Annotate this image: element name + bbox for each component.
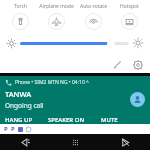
button[interactable]: SPEAKER ON	[48, 115, 101, 124]
button[interactable]: Edit	[110, 57, 125, 72]
staticText: Airplane mode	[39, 3, 74, 10]
button[interactable]: Hotspot	[112, 3, 147, 30]
staticText: HANG UP	[5, 116, 33, 124]
button[interactable]: MUTE	[101, 115, 145, 124]
staticText: Auto-rotate	[80, 3, 107, 10]
staticText: SPEAKER ON	[48, 116, 85, 124]
button[interactable]: Home	[50, 134, 100, 150]
button[interactable]: Recents	[100, 134, 150, 150]
button[interactable]: Settings	[130, 57, 145, 72]
staticText: Phone • SIM2 MTN NG • 04:10 ^	[15, 79, 89, 86]
button[interactable]: Airplane mode	[39, 3, 74, 30]
button[interactable]: Torch	[3, 3, 38, 30]
button[interactable]: Phone • SIM2 MTN NG • 04:10 ^	[0, 76, 150, 124]
staticText: P	[11, 125, 15, 133]
staticText: Hotspot	[120, 3, 139, 10]
staticText: TANWA	[5, 89, 32, 99]
staticText: Torch	[14, 3, 27, 10]
button[interactable]: Back	[0, 134, 50, 150]
staticText: P	[4, 125, 8, 133]
button[interactable]: HANG UP	[5, 115, 48, 124]
staticText: MUTE	[101, 116, 118, 124]
button[interactable]: Auto-rotate	[76, 3, 111, 30]
staticText: Ongoing call	[5, 101, 44, 110]
button[interactable]	[6, 35, 144, 51]
